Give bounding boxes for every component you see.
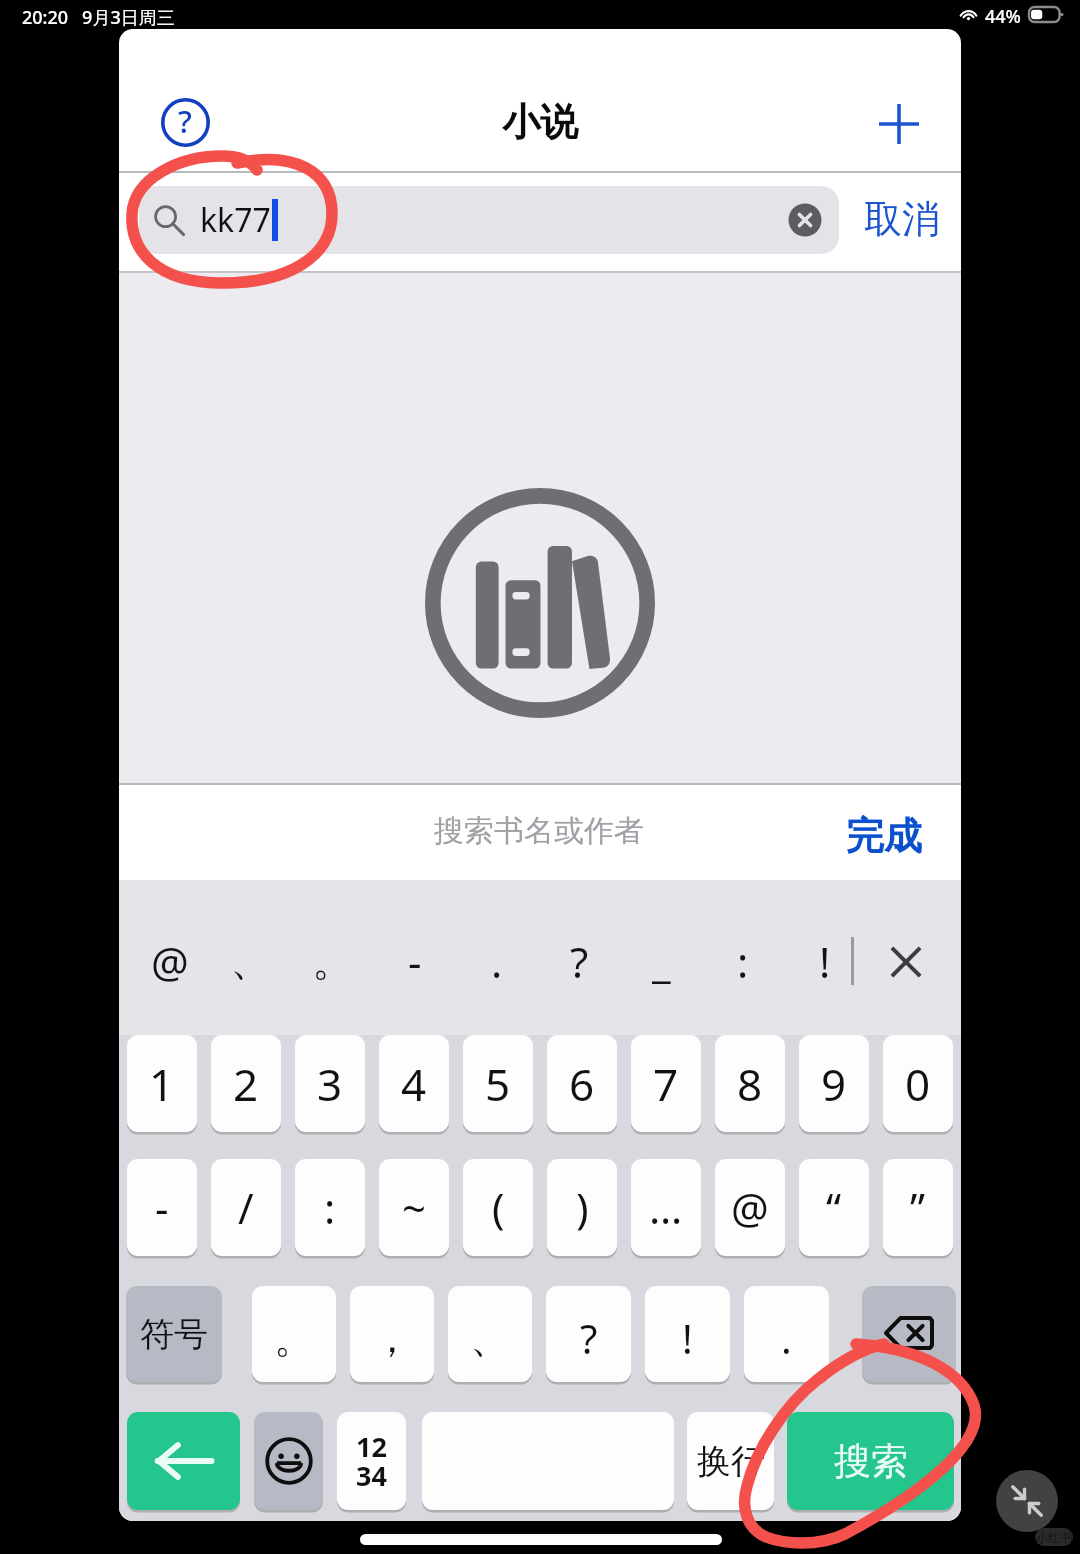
- button[interactable]: Add book: [869, 94, 929, 154]
- button[interactable]: 7: [631, 1035, 701, 1132]
- staticText: 换行: [697, 1440, 765, 1483]
- button[interactable]: Close keyboard: [865, 880, 947, 1035]
- staticText: ，: [372, 1313, 412, 1363]
- button[interactable]: :: [295, 1159, 365, 1256]
- button[interactable]: Numbers: [337, 1412, 406, 1510]
- staticText: :: [737, 933, 749, 990]
- staticText: .: [491, 933, 503, 990]
- staticText: 2: [233, 1054, 259, 1114]
- staticText: 小说: [502, 98, 578, 146]
- button[interactable]: ): [547, 1159, 617, 1256]
- staticText: /: [238, 1179, 254, 1236]
- button[interactable]: 0: [883, 1035, 953, 1132]
- button[interactable]: 4: [379, 1035, 449, 1132]
- button[interactable]: .: [456, 880, 538, 1035]
- staticText: ~: [402, 1179, 427, 1236]
- staticText: 4: [401, 1054, 427, 1114]
- button[interactable]: !: [645, 1286, 730, 1382]
- staticText: 8: [737, 1054, 763, 1114]
- staticText: !: [682, 1311, 693, 1365]
- staticText: @: [731, 1179, 769, 1236]
- button[interactable]: 5: [463, 1035, 533, 1132]
- button[interactable]: Clear text: [785, 200, 825, 240]
- button[interactable]: !: [784, 880, 866, 1035]
- button[interactable]: 9: [799, 1035, 869, 1132]
- staticText: 。: [274, 1313, 314, 1363]
- staticText: 20:20 9月3日周三: [22, 5, 175, 30]
- button[interactable]: 、: [210, 880, 292, 1035]
- staticText: 小红书: [1036, 1530, 1072, 1545]
- staticText: 搜索书名或作者: [434, 812, 644, 850]
- staticText: ?: [178, 100, 192, 142]
- button[interactable]: kk77: [139, 186, 839, 254]
- staticText: 搜索: [834, 1438, 908, 1485]
- staticText: @: [151, 933, 189, 990]
- staticText: “: [826, 1179, 842, 1236]
- button[interactable]: 搜索: [787, 1412, 954, 1510]
- staticText: 9: [821, 1054, 847, 1114]
- button[interactable]: :: [702, 880, 784, 1035]
- button[interactable]: ”: [883, 1159, 953, 1256]
- staticText: !: [819, 933, 831, 990]
- button[interactable]: Shrink window: [996, 1470, 1058, 1532]
- button[interactable]: 换行: [687, 1412, 774, 1510]
- button[interactable]: .: [744, 1286, 829, 1382]
- staticText: 3: [317, 1054, 343, 1114]
- button[interactable]: 2: [211, 1035, 281, 1132]
- button[interactable]: @: [129, 880, 210, 1035]
- staticText: _: [652, 933, 671, 990]
- button[interactable]: (: [463, 1159, 533, 1256]
- button[interactable]: 符号: [126, 1286, 222, 1382]
- staticText: 0: [905, 1054, 931, 1114]
- button[interactable]: 取消: [852, 189, 952, 249]
- staticText: 6: [569, 1054, 595, 1114]
- staticText: 7: [653, 1054, 679, 1114]
- staticText: 、: [230, 935, 272, 988]
- button[interactable]: Backspace: [862, 1286, 956, 1382]
- button[interactable]: @: [715, 1159, 785, 1256]
- button[interactable]: 完成: [836, 805, 932, 867]
- button[interactable]: 6: [547, 1035, 617, 1132]
- staticText: .: [781, 1311, 792, 1365]
- button[interactable]: 、: [448, 1286, 532, 1382]
- staticText: 。: [312, 935, 354, 988]
- button[interactable]: ?: [546, 1286, 631, 1382]
- button[interactable]: ?: [538, 880, 620, 1035]
- staticText: ?: [580, 1311, 598, 1365]
- button[interactable]: Space: [422, 1412, 674, 1510]
- staticText: 、: [470, 1313, 510, 1363]
- staticText: -: [155, 1179, 169, 1236]
- button[interactable]: ，: [350, 1286, 434, 1382]
- button[interactable]: 。: [292, 880, 374, 1035]
- staticText: …: [649, 1179, 683, 1236]
- staticText: :: [324, 1179, 336, 1236]
- button[interactable]: Emoji: [254, 1412, 323, 1510]
- staticText: 12 34: [356, 1428, 387, 1494]
- button[interactable]: Back: [127, 1412, 240, 1510]
- staticText: 符号: [140, 1313, 208, 1356]
- staticText: 1: [149, 1054, 175, 1114]
- staticText: kk77: [200, 198, 271, 242]
- staticText: 44%: [985, 4, 1021, 24]
- staticText: ): [576, 1179, 589, 1236]
- button[interactable]: -: [127, 1159, 197, 1256]
- button[interactable]: /: [211, 1159, 281, 1256]
- staticText: 取消: [864, 195, 940, 243]
- button[interactable]: …: [631, 1159, 701, 1256]
- staticText: 完成: [846, 812, 922, 860]
- staticText: -: [408, 933, 422, 990]
- button[interactable]: ~: [379, 1159, 449, 1256]
- button[interactable]: 8: [715, 1035, 785, 1132]
- button[interactable]: 1: [127, 1035, 197, 1132]
- button[interactable]: 。: [252, 1286, 336, 1382]
- staticText: (: [492, 1179, 505, 1236]
- button[interactable]: -: [374, 880, 456, 1035]
- staticText: ”: [910, 1179, 926, 1236]
- button[interactable]: 3: [295, 1035, 365, 1132]
- button[interactable]: Help: [155, 92, 215, 152]
- staticText: ?: [570, 933, 589, 990]
- button[interactable]: “: [799, 1159, 869, 1256]
- staticText: 5: [485, 1054, 511, 1114]
- button[interactable]: _: [620, 880, 702, 1035]
